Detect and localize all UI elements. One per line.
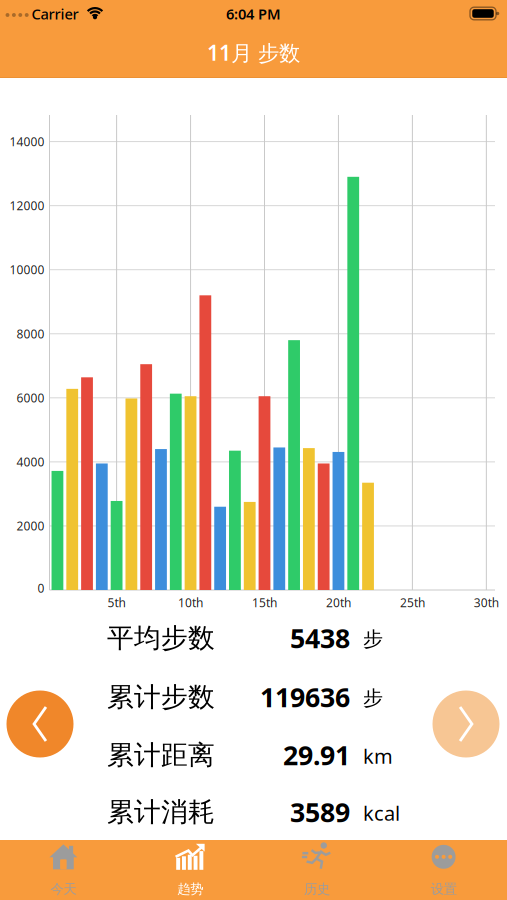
staticText: 步 bbox=[363, 686, 383, 710]
staticText: 119636 bbox=[260, 679, 350, 715]
button[interactable]: Next month bbox=[432, 690, 499, 757]
button[interactable]: Previous month bbox=[6, 690, 73, 757]
staticText: 2000 bbox=[16, 518, 44, 534]
staticText: 步 bbox=[363, 627, 383, 651]
staticText: 5th bbox=[108, 594, 126, 610]
staticText: 趋势 bbox=[177, 881, 203, 897]
button[interactable]: 趋势 bbox=[127, 840, 254, 900]
staticText: 4000 bbox=[16, 454, 44, 470]
staticText: 累计步数 bbox=[107, 681, 215, 713]
staticText: 6000 bbox=[16, 390, 44, 406]
staticText: 14000 bbox=[9, 134, 44, 149]
staticText: 设置 bbox=[431, 881, 457, 897]
staticText: 30th bbox=[474, 594, 499, 610]
staticText: 0 bbox=[37, 580, 44, 596]
staticText: 10000 bbox=[9, 262, 44, 278]
button[interactable]: 今天 bbox=[0, 840, 127, 900]
staticText: 25th bbox=[400, 594, 425, 610]
staticText: 历史 bbox=[304, 881, 330, 897]
button[interactable]: 设置 bbox=[380, 840, 507, 900]
staticText: kcal bbox=[363, 800, 400, 826]
staticText: 15th bbox=[252, 594, 277, 610]
staticText: 29.91 bbox=[283, 737, 350, 773]
staticText: 5438 bbox=[290, 620, 350, 656]
staticText: 平均步数 bbox=[107, 622, 215, 654]
staticText: 10th bbox=[178, 594, 203, 610]
staticText: 20th bbox=[326, 594, 351, 610]
staticText: 11月 步数 bbox=[207, 38, 300, 67]
staticText: 8000 bbox=[16, 326, 44, 342]
button[interactable]: 历史 bbox=[253, 840, 380, 900]
staticText: km bbox=[363, 743, 393, 769]
staticText: Carrier bbox=[31, 4, 78, 24]
staticText: 累计距离 bbox=[107, 739, 215, 771]
staticText: 12000 bbox=[9, 198, 44, 214]
staticText: 6:04 PM bbox=[226, 4, 281, 24]
staticText: 3589 bbox=[290, 794, 350, 830]
staticText: 今天 bbox=[50, 881, 76, 897]
staticText: 累计消耗 bbox=[107, 796, 215, 828]
